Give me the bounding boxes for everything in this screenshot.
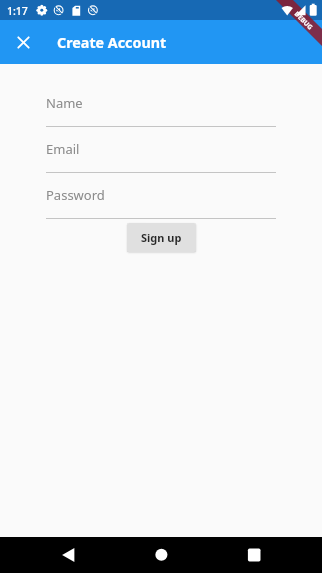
button[interactable]: Name (46, 94, 276, 127)
staticText: 1:17 (7, 4, 28, 18)
button[interactable]: Home (139, 537, 185, 573)
button[interactable]: Back (45, 537, 91, 573)
button[interactable]: Sign up (127, 223, 196, 252)
button[interactable]: Email (46, 140, 276, 173)
button[interactable]: Close (0, 20, 44, 64)
staticText: Create Account (57, 33, 167, 52)
button[interactable]: Password (46, 186, 276, 219)
staticText: Email (46, 140, 80, 158)
button[interactable]: Recent apps (231, 537, 277, 573)
staticText: Password (46, 186, 105, 204)
staticText: Sign up (141, 230, 182, 245)
staticText: DEBUG (293, 9, 315, 32)
staticText: Name (46, 94, 83, 112)
